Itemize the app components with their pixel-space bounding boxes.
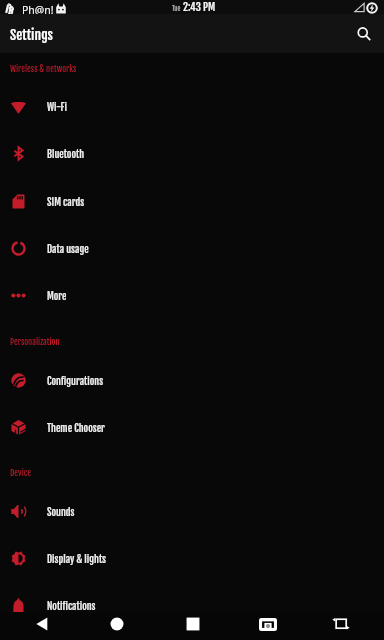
staticText: Sounds xyxy=(47,506,75,518)
staticText: Notifications xyxy=(47,600,96,612)
staticText: Display & lights xyxy=(47,553,106,565)
button[interactable]: Display & lights xyxy=(0,535,384,582)
button[interactable]: SIM cards xyxy=(0,178,384,225)
button[interactable]: Data usage xyxy=(0,225,384,272)
button[interactable]: Home xyxy=(99,610,135,638)
button[interactable]: Back xyxy=(24,610,60,638)
button[interactable]: Recent apps xyxy=(175,610,211,638)
staticText: More xyxy=(47,290,67,302)
button[interactable]: More xyxy=(0,272,384,319)
staticText: Ph@n! xyxy=(22,3,54,17)
staticText: Device xyxy=(10,468,31,479)
staticText: Wi-Fi xyxy=(47,101,67,113)
staticText: 2:43 PM xyxy=(183,0,216,13)
staticText: Theme Chooser xyxy=(47,422,105,434)
button[interactable]: Partial screenshot xyxy=(323,610,359,638)
staticText: Personalization xyxy=(10,337,60,348)
staticText: Wireless & networks xyxy=(10,64,77,75)
button[interactable]: Wi-Fi xyxy=(0,83,384,130)
staticText: SIM cards xyxy=(47,196,85,208)
button[interactable]: Screenshot xyxy=(250,610,286,638)
staticText: Configurations xyxy=(47,375,104,387)
button[interactable]: Theme Chooser xyxy=(0,404,384,451)
button[interactable]: Notifications xyxy=(0,582,384,629)
button[interactable]: Configurations xyxy=(0,357,384,404)
staticText: Bluetooth xyxy=(47,148,85,160)
staticText: Data usage xyxy=(47,243,89,255)
staticText: Tue xyxy=(172,4,181,12)
button[interactable]: Search xyxy=(349,19,379,49)
staticText: Settings xyxy=(10,26,53,43)
button[interactable]: Bluetooth xyxy=(0,130,384,177)
button[interactable]: Sounds xyxy=(0,488,384,535)
